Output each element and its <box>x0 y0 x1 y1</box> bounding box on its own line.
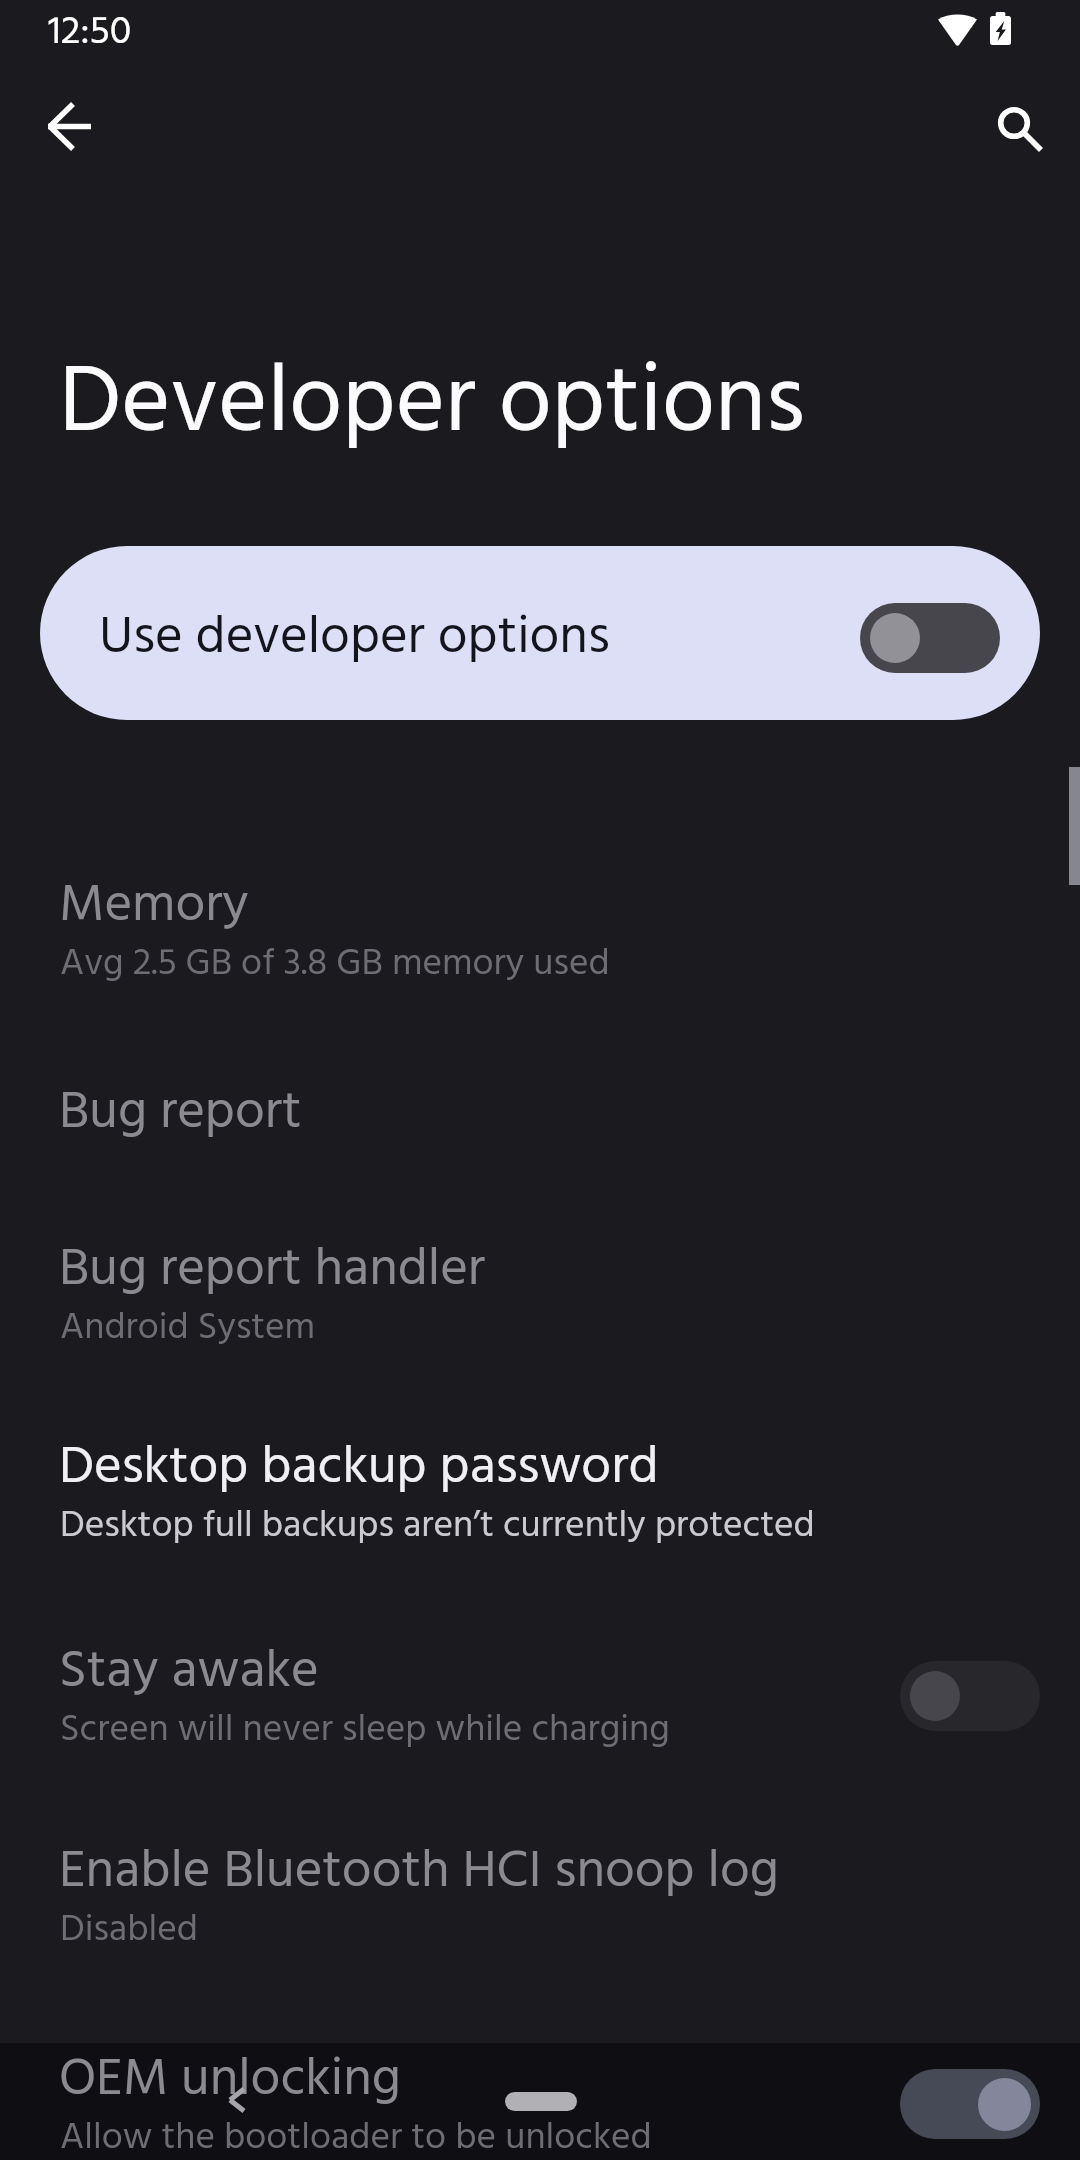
button[interactable]: Enable Bluetooth HCI snoop log <box>0 1800 1080 1958</box>
button[interactable]: Stay awake <box>0 1600 1080 1758</box>
staticText: Developer options <box>59 331 805 482</box>
staticText: Enable Bluetooth HCI snoop log <box>59 1830 779 1915</box>
staticText: Use developer options <box>99 596 610 681</box>
staticText: Memory <box>59 864 249 949</box>
button[interactable]: Back <box>22 79 118 175</box>
button[interactable]: Home <box>505 2092 577 2111</box>
staticText: Bug report handler <box>59 1228 486 1313</box>
staticText: Screen will never sleep while charging <box>60 1701 670 1761</box>
staticText: Android System <box>60 1299 316 1359</box>
button[interactable]: Bug report <box>0 1041 1080 1133</box>
button[interactable]: Bug report handler <box>0 1198 1080 1356</box>
button[interactable]: Use developer options <box>40 546 1040 720</box>
staticText: Desktop full backups aren’t currently pr… <box>60 1497 815 1557</box>
staticText: Bug report <box>59 1071 302 1156</box>
staticText: Avg 2.5 GB of 3.8 GB memory used <box>60 935 610 995</box>
staticText: Stay awake <box>59 1630 319 1715</box>
button[interactable]: Memory <box>0 834 1080 992</box>
staticText: Allow the bootloader to be unlocked <box>60 2109 652 2160</box>
button[interactable]: Desktop backup password <box>0 1396 1080 1554</box>
staticText: OEM unlocking <box>59 2038 401 2123</box>
staticText: 12:50 <box>48 1 132 64</box>
button[interactable]: Search <box>966 75 1062 171</box>
staticText: Desktop backup password <box>59 1426 659 1511</box>
staticText: Disabled <box>60 1901 198 1961</box>
button[interactable]: Back <box>201 2064 273 2136</box>
button[interactable]: OEM unlocking <box>0 2008 1080 2160</box>
